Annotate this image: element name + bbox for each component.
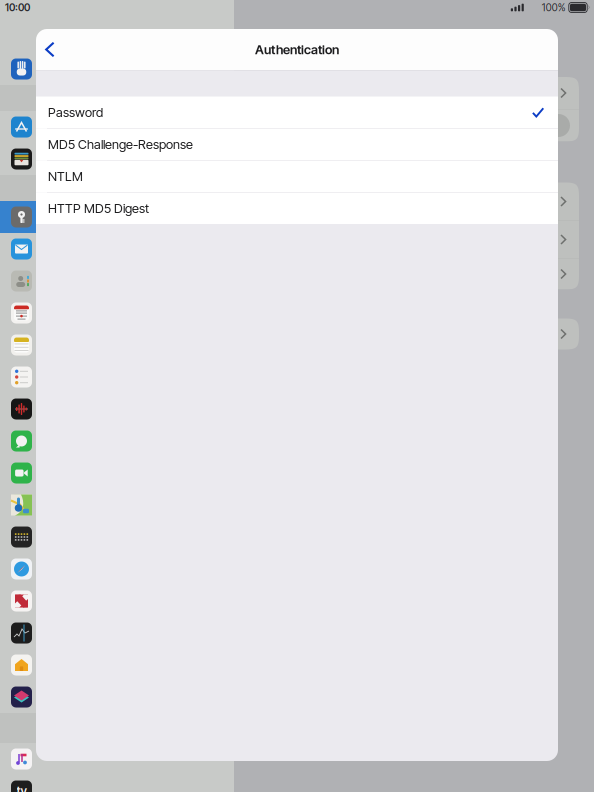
button[interactable]: Settings item	[0, 649, 234, 681]
button[interactable]: HTTP MD5 Digest	[36, 192, 558, 224]
button[interactable]: Settings item	[0, 743, 234, 775]
staticText: MD5 Challenge-Response	[48, 136, 193, 152]
staticText: 100%	[542, 1, 566, 14]
button[interactable]: Settings item	[0, 297, 234, 329]
button[interactable]: Settings item	[0, 393, 234, 425]
staticText: Password	[48, 104, 103, 120]
button[interactable]: NTLM	[36, 160, 558, 192]
button[interactable]: Settings item	[0, 425, 234, 457]
button[interactable]: Settings item	[0, 201, 234, 233]
staticText: HTTP MD5 Digest	[48, 200, 149, 216]
button[interactable]: Password	[36, 96, 558, 128]
button[interactable]: Settings item	[0, 775, 234, 792]
button[interactable]: Settings item	[0, 585, 234, 617]
button[interactable]: Settings item	[0, 111, 234, 143]
button[interactable]: Settings item	[0, 617, 234, 649]
button[interactable]: Settings item	[0, 489, 234, 521]
button[interactable]: Settings item	[0, 53, 234, 85]
button[interactable]: Settings item	[0, 553, 234, 585]
button[interactable]: Settings item	[0, 143, 234, 175]
button[interactable]: Settings item	[0, 329, 234, 361]
button[interactable]: MD5 Challenge-Response	[36, 128, 558, 160]
button[interactable]: Settings item	[0, 233, 234, 265]
button[interactable]: Settings item	[0, 521, 234, 553]
button[interactable]: Settings item	[0, 681, 234, 713]
staticText: Authentication	[255, 42, 339, 57]
staticText: NTLM	[48, 168, 83, 184]
button[interactable]: Settings item	[0, 265, 234, 297]
button[interactable]: Back	[36, 29, 66, 69]
staticText: 10:00	[5, 1, 30, 14]
button[interactable]: Settings item	[0, 361, 234, 393]
staticText: tv	[16, 784, 26, 792]
button[interactable]: Settings item	[0, 457, 234, 489]
